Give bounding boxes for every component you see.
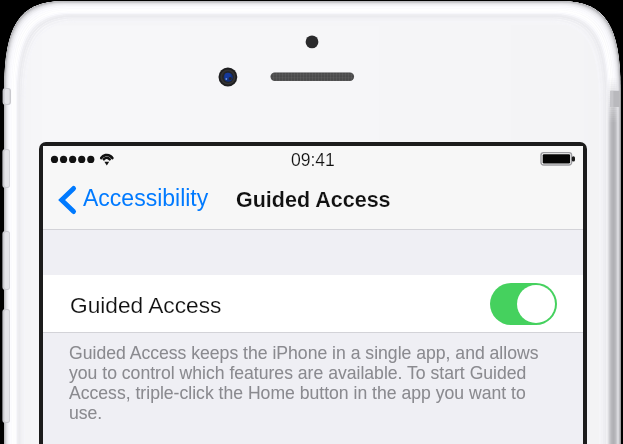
staticText: Guided Access	[236, 188, 391, 212]
staticText: Accessibility	[83, 185, 209, 211]
button[interactable]: Guided Access	[43, 275, 583, 333]
button[interactable]: Accessibility	[43, 180, 219, 220]
staticText: Guided Access keeps the iPhone in a sing…	[69, 343, 563, 423]
staticText: 09:41	[291, 150, 335, 170]
button[interactable]: Guided Access toggle	[490, 283, 557, 325]
staticText: Guided Access	[70, 292, 222, 317]
